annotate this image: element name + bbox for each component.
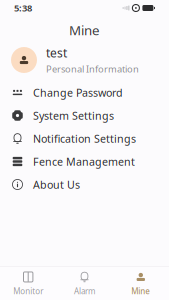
staticText: Notification Settings: [33, 131, 136, 146]
button[interactable]: Alarm: [56, 267, 113, 300]
staticText: Monitor: [13, 286, 43, 296]
button[interactable]: Notification Settings: [0, 127, 169, 150]
staticText: Mine: [131, 286, 150, 296]
button[interactable]: Mine: [113, 267, 169, 300]
staticText: 5:38: [14, 2, 32, 14]
button[interactable]: About Us: [0, 173, 169, 196]
staticText: Personal Information: [46, 63, 139, 75]
button[interactable]: System Settings: [0, 104, 169, 127]
staticText: Mine: [69, 21, 100, 39]
button[interactable]: Change Password: [0, 81, 169, 104]
staticText: test: [46, 45, 67, 61]
staticText: Alarm: [74, 286, 95, 296]
button[interactable]: Monitor: [0, 267, 56, 300]
staticText: System Settings: [33, 108, 114, 123]
staticText: Change Password: [33, 85, 123, 100]
staticText: Fence Management: [33, 154, 135, 169]
button[interactable]: Fence Management: [0, 150, 169, 173]
button[interactable]: test: [0, 41, 169, 79]
staticText: About Us: [33, 177, 80, 192]
